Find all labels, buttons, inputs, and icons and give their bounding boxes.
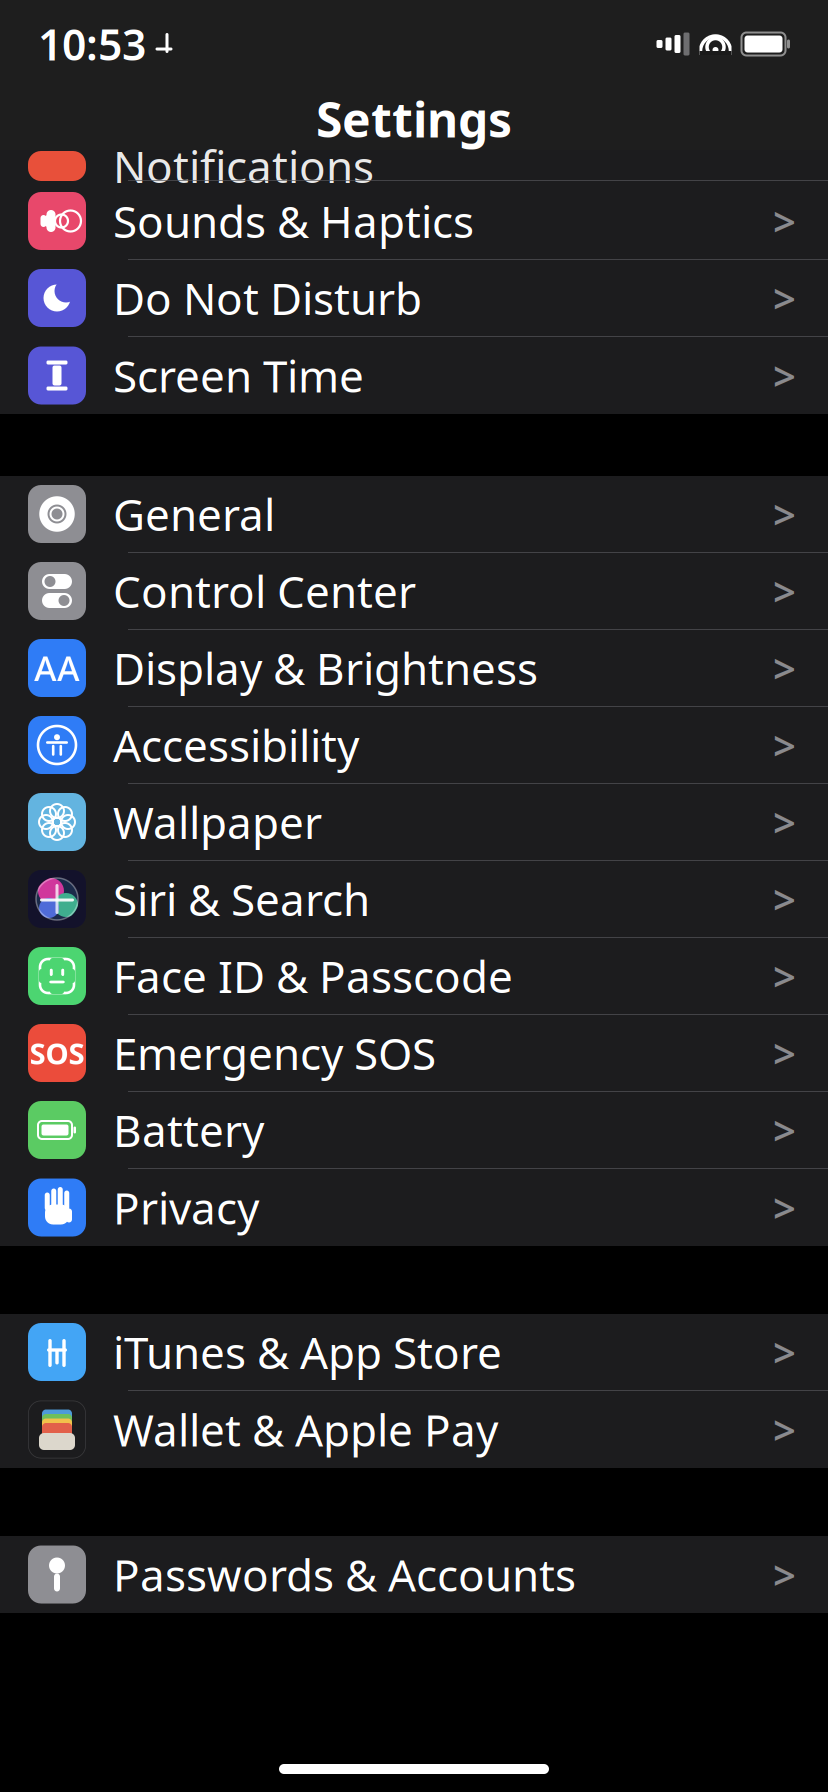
staticText: SOS	[29, 1033, 84, 1072]
button[interactable]: Wallet & Apple Pay	[0, 1391, 828, 1468]
button[interactable]: Screen Time	[0, 337, 828, 414]
staticText: Do Not Disturb	[113, 269, 422, 327]
staticText: >	[773, 487, 796, 540]
staticText: >	[773, 718, 796, 771]
staticText: >	[773, 1181, 796, 1234]
staticText: 10:53	[38, 16, 146, 72]
staticText: >	[773, 1026, 796, 1079]
button[interactable]: iTunes & App Store	[0, 1314, 828, 1391]
staticText: Notifications	[113, 137, 374, 195]
staticText: Emergency SOS	[113, 1024, 436, 1082]
staticText: >	[773, 194, 796, 247]
staticText: Wallet & Apple Pay	[113, 1400, 498, 1459]
button[interactable]: Privacy	[0, 1169, 828, 1246]
button[interactable]: Face ID & Passcode	[0, 938, 828, 1015]
staticText: Settings	[316, 87, 512, 151]
staticText: >	[773, 872, 796, 925]
staticText: Wallpaper	[113, 793, 322, 851]
button[interactable]: Wallpaper	[0, 784, 828, 861]
staticText: Accessibility	[113, 716, 359, 774]
button[interactable]: Control Center	[0, 553, 828, 630]
staticText: >	[773, 795, 796, 848]
staticText: >	[773, 641, 796, 694]
button[interactable]: Notifications	[0, 150, 828, 183]
staticText: Display & Brightness	[113, 639, 538, 697]
staticText: Privacy	[113, 1178, 259, 1237]
staticText: >	[773, 1403, 796, 1456]
staticText: Passwords & Accounts	[113, 1545, 576, 1604]
staticText: iTunes & App Store	[113, 1323, 502, 1381]
button[interactable]: General	[0, 476, 828, 553]
staticText: >	[773, 1325, 796, 1378]
button[interactable]: Siri & Search	[0, 861, 828, 938]
staticText: >	[773, 349, 796, 402]
staticText: >	[773, 1548, 796, 1601]
button[interactable]: Passwords & Accounts	[0, 1536, 828, 1613]
staticText: Control Center	[113, 562, 416, 620]
staticText: Battery	[113, 1101, 264, 1159]
button[interactable]: Accessibility	[0, 707, 828, 784]
staticText: Siri & Search	[113, 870, 370, 928]
staticText: >	[773, 1103, 796, 1156]
button[interactable]: SOS	[0, 1015, 828, 1092]
staticText: Sounds & Haptics	[113, 192, 474, 250]
staticText: Face ID & Passcode	[113, 947, 513, 1005]
staticText: Screen Time	[113, 346, 364, 405]
staticText: AA	[34, 645, 80, 691]
staticText: General	[113, 485, 275, 543]
button[interactable]: AA	[0, 630, 828, 707]
button[interactable]: Do Not Disturb	[0, 260, 828, 337]
button[interactable]: Battery	[0, 1092, 828, 1169]
staticText: >	[773, 271, 796, 324]
button[interactable]: Sounds & Haptics	[0, 183, 828, 260]
staticText: >	[773, 564, 796, 617]
staticText: >	[773, 949, 796, 1002]
